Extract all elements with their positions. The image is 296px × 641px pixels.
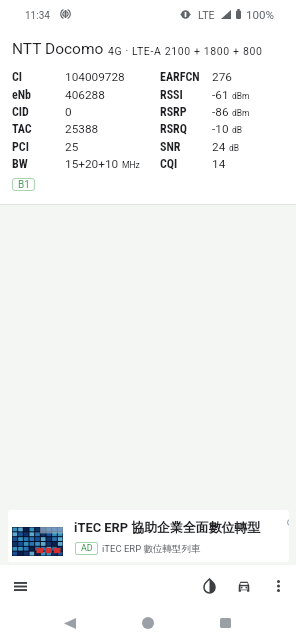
button[interactable]: Driving mode — [230, 572, 258, 600]
staticText: BW — [12, 157, 65, 171]
staticText: PCI — [12, 140, 65, 154]
staticText: AD — [81, 543, 93, 554]
staticText: SNR — [160, 140, 212, 154]
button[interactable]: More options — [265, 572, 292, 600]
button[interactable]: Home — [130, 606, 166, 640]
staticText: NTT Docomo — [12, 40, 104, 58]
staticText: -10 — [212, 122, 229, 136]
button[interactable]: Recents — [207, 606, 243, 640]
staticText: 25388 — [65, 122, 99, 136]
staticText: 406288 — [65, 88, 105, 102]
staticText: B1 — [18, 179, 30, 191]
staticText: dB — [232, 125, 243, 135]
staticText: 25 — [65, 140, 79, 154]
other: Ad info — [287, 519, 289, 526]
staticText: 24 — [212, 140, 226, 154]
staticText: EARFCN — [160, 70, 212, 84]
staticText: CQI — [160, 157, 212, 171]
staticText: 276 — [212, 70, 232, 84]
staticText: TAC — [12, 122, 65, 136]
staticText: dBm — [232, 91, 250, 101]
staticText: 4G · LTE-A 2100 + 1800 + 800 — [108, 45, 263, 57]
other: Vibrate — [61, 9, 70, 19]
staticText: 0 — [65, 105, 72, 119]
staticText: 14 — [212, 157, 226, 171]
staticText: eNb — [12, 88, 65, 102]
staticText: iTEC ERP 協助企業全面數位轉型 — [74, 520, 261, 536]
staticText: RSSI — [160, 88, 212, 102]
button[interactable]: B1 — [12, 178, 35, 191]
staticText: CI — [12, 70, 65, 84]
button[interactable]: Contrast — [195, 572, 223, 600]
staticText: iTEC ERP 數位轉型列車 — [102, 543, 201, 555]
staticText: 15+20+10 — [65, 157, 119, 171]
button[interactable]: iTEC ERP 協助企業全面數位轉型 — [8, 510, 289, 562]
staticText: 100% — [246, 8, 275, 22]
staticText: dBm — [232, 108, 250, 118]
staticText: MHz — [122, 160, 140, 170]
staticText: LTE — [198, 9, 215, 21]
staticText: -86 — [212, 105, 229, 119]
staticText: dB — [229, 143, 240, 153]
staticText: RSRQ — [160, 122, 212, 136]
button[interactable]: Menu — [3, 572, 37, 600]
staticText: CID — [12, 105, 65, 119]
staticText: 104009728 — [65, 70, 125, 84]
button[interactable]: Back — [52, 606, 88, 640]
staticText: RSRP — [160, 105, 212, 119]
staticText: -61 — [212, 88, 229, 102]
staticText: 11:34 — [25, 10, 50, 22]
